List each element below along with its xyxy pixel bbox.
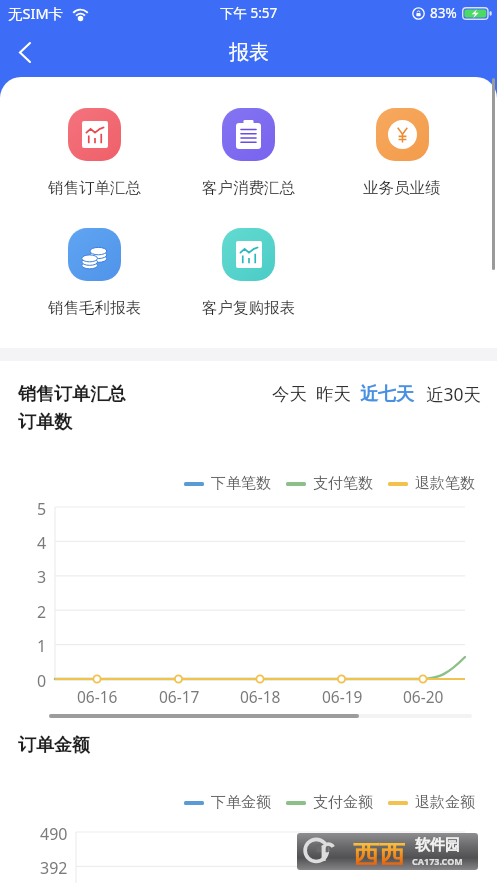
staticText: 客户复购报表 bbox=[202, 298, 295, 318]
staticText: 退款金额 bbox=[415, 793, 475, 812]
button[interactable]: 业务员业绩 bbox=[325, 106, 479, 200]
staticText: 06-18 bbox=[240, 686, 281, 707]
staticText: 06-19 bbox=[322, 686, 363, 707]
staticText: 无SIM卡 bbox=[8, 3, 64, 23]
staticText: 报表 bbox=[229, 40, 269, 65]
staticText: 3 bbox=[37, 566, 47, 588]
staticText: 0 bbox=[37, 670, 47, 692]
staticText: 近七天 bbox=[360, 383, 414, 406]
button[interactable]: 客户复购报表 bbox=[171, 226, 325, 320]
staticText: 订单金额 bbox=[18, 734, 90, 757]
staticText: 西西 bbox=[353, 839, 405, 865]
button[interactable]: 销售订单汇总 bbox=[18, 106, 171, 200]
staticText: 2 bbox=[37, 601, 47, 623]
button[interactable]: 今天 bbox=[270, 381, 309, 407]
staticText: 支付笔数 bbox=[313, 474, 373, 493]
staticText: 1 bbox=[37, 635, 47, 657]
staticText: 下单金额 bbox=[211, 793, 271, 812]
staticText: 客户消费汇总 bbox=[202, 178, 295, 198]
staticText: 392 bbox=[40, 857, 68, 879]
staticText: 销售订单汇总 bbox=[18, 383, 126, 406]
button[interactable]: 近七天 bbox=[358, 381, 416, 408]
staticText: 4 bbox=[37, 532, 47, 554]
staticText: 06-16 bbox=[77, 686, 118, 707]
staticText: 下午 5:57 bbox=[220, 4, 278, 22]
staticText: CA173.COM bbox=[412, 855, 463, 867]
staticText: 下单笔数 bbox=[211, 474, 271, 493]
staticText: 退款笔数 bbox=[415, 474, 475, 493]
staticText: 5 bbox=[37, 498, 47, 520]
staticText: 06-17 bbox=[159, 686, 200, 707]
button[interactable]: 客户消费汇总 bbox=[171, 106, 325, 200]
button[interactable]: 昨天 bbox=[314, 381, 353, 407]
staticText: 订单数 bbox=[18, 411, 72, 434]
staticText: 销售订单汇总 bbox=[48, 178, 141, 198]
staticText: 支付金额 bbox=[313, 793, 373, 812]
staticText: 今天 bbox=[272, 383, 307, 405]
staticText: 83% bbox=[430, 4, 457, 22]
button[interactable]: Back bbox=[5, 32, 45, 72]
staticText: 近30天 bbox=[426, 382, 482, 406]
staticText: 06-20 bbox=[403, 686, 444, 707]
button[interactable]: 近30天 bbox=[424, 380, 484, 408]
staticText: 销售毛利报表 bbox=[48, 298, 141, 318]
button[interactable]: 销售毛利报表 bbox=[18, 226, 171, 320]
staticText: 490 bbox=[40, 823, 68, 845]
staticText: 业务员业绩 bbox=[363, 178, 441, 198]
staticText: 软件园 bbox=[415, 836, 460, 855]
staticText: 昨天 bbox=[316, 383, 351, 405]
